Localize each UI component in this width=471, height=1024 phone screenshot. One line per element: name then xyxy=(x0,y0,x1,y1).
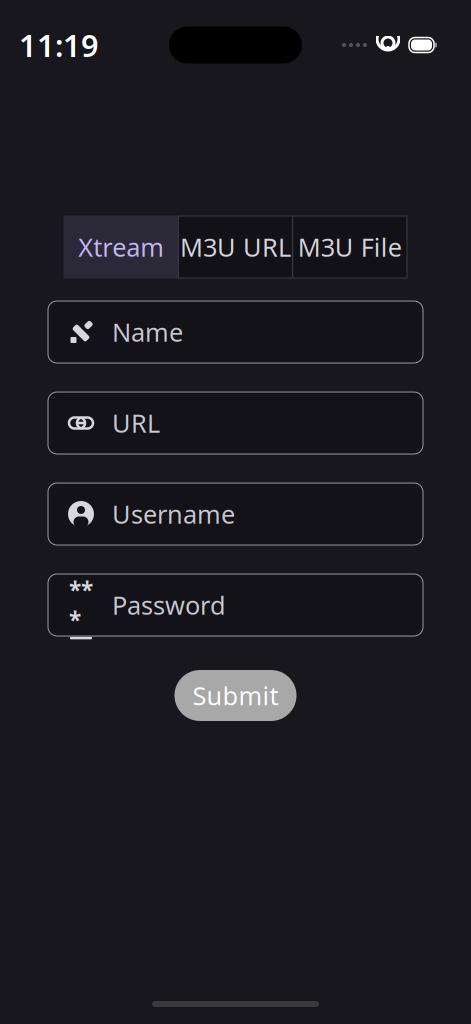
staticText: Submit xyxy=(192,679,278,712)
staticText: Username xyxy=(112,497,235,531)
staticText: *** xyxy=(69,575,93,635)
button[interactable]: *** xyxy=(48,574,423,636)
staticText: URL xyxy=(112,406,160,440)
button[interactable]: Submit xyxy=(174,670,296,721)
staticText: Xtream xyxy=(78,230,164,264)
staticText: Password xyxy=(112,588,226,622)
button[interactable]: Name xyxy=(48,301,423,363)
staticText: 11:19 xyxy=(19,25,99,65)
staticText: M3U URL xyxy=(180,230,291,264)
button[interactable]: URL xyxy=(48,392,423,454)
staticText: Name xyxy=(112,315,183,349)
button[interactable]: Xtream xyxy=(64,216,178,278)
button[interactable]: Username xyxy=(48,483,423,545)
staticText: M3U File xyxy=(298,230,402,264)
button[interactable]: M3U URL xyxy=(178,216,293,278)
button[interactable]: M3U File xyxy=(293,216,407,278)
